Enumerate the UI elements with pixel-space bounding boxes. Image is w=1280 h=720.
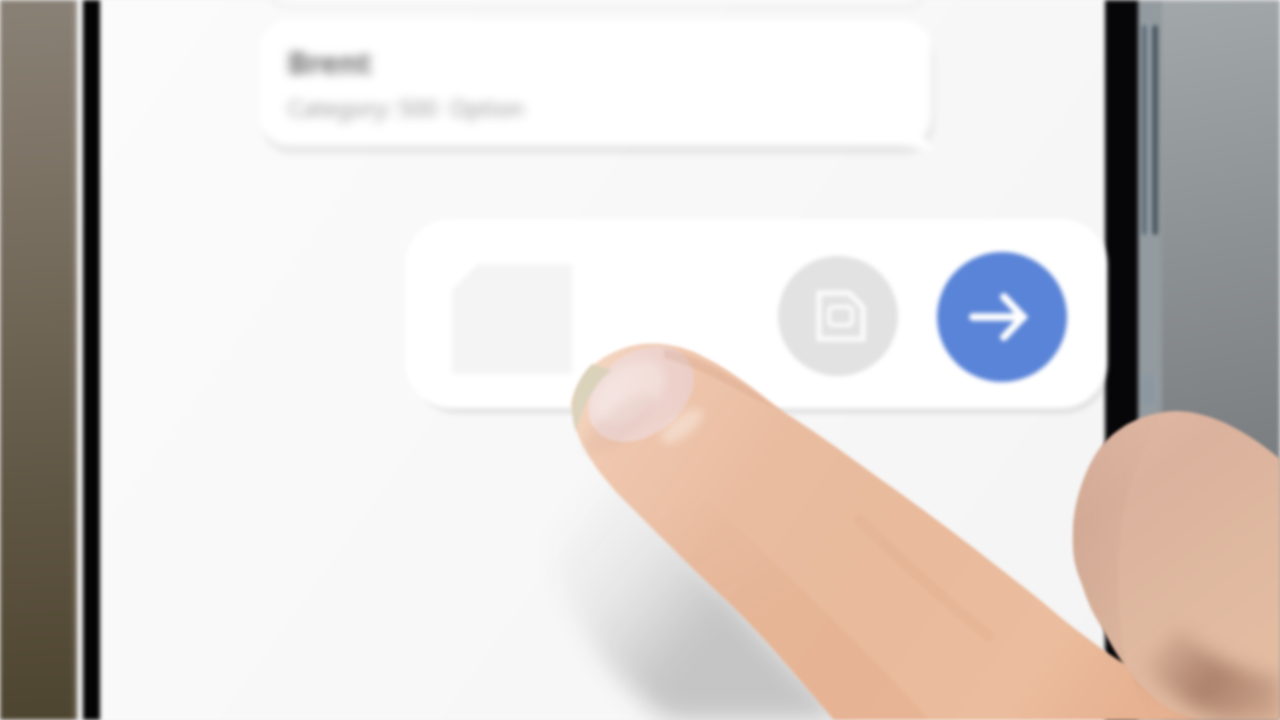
- staticText: Category: 500 Option: [288, 92, 525, 123]
- button[interactable]: Text message input field: [405, 219, 765, 408]
- staticText: Brent: [288, 42, 372, 83]
- button[interactable]: Message from Brent: [260, 20, 936, 146]
- button[interactable]: Send: [937, 252, 1067, 382]
- button[interactable]: Choose SIM card: [778, 256, 898, 376]
